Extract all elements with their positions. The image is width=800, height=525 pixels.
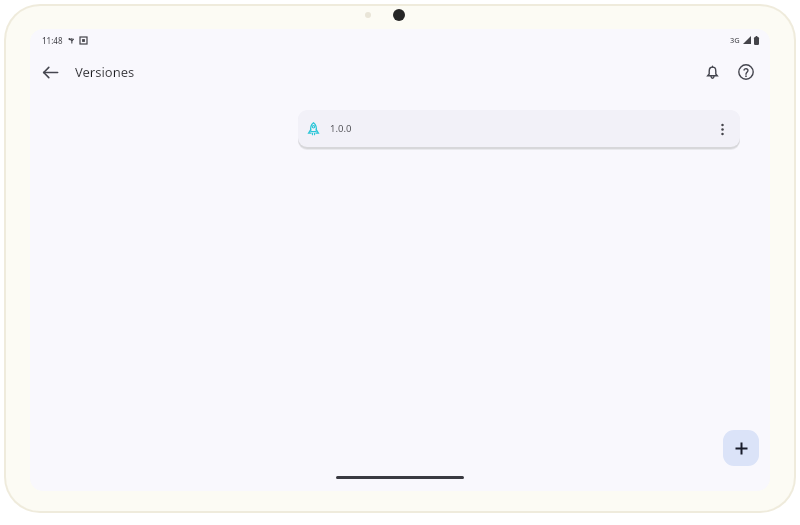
staticText: 11:48: [42, 35, 63, 46]
button[interactable]: Add version: [723, 430, 759, 466]
staticText: 3G: [730, 35, 740, 45]
button[interactable]: Back: [30, 52, 70, 92]
button[interactable]: More options: [707, 114, 737, 144]
button[interactable]: Help: [730, 56, 762, 88]
button[interactable]: Notifications: [696, 56, 728, 88]
button[interactable]: 1.0.0: [298, 110, 740, 147]
staticText: 1.0.0: [330, 122, 352, 135]
staticText: Versiones: [75, 63, 135, 81]
